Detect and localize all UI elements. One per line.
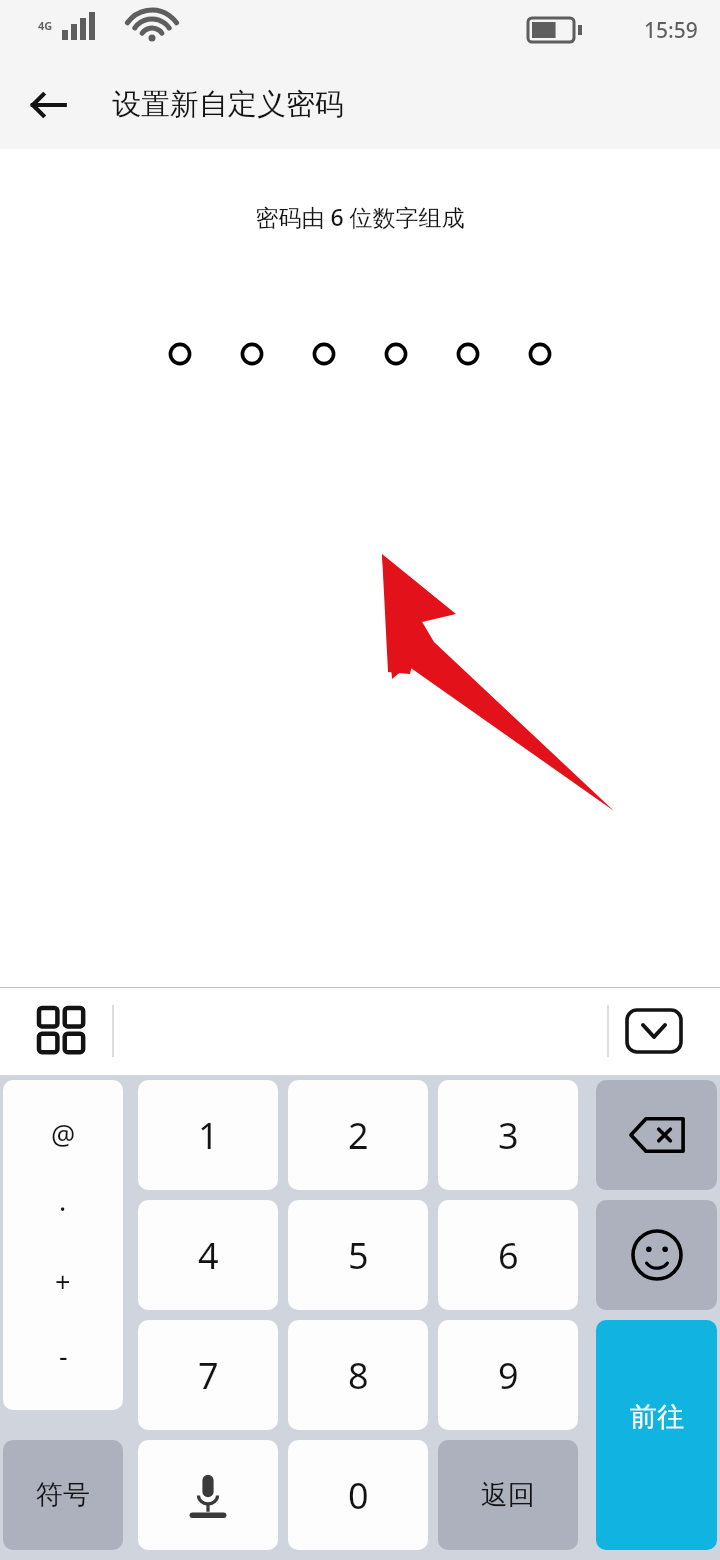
button[interactable]: Hide keyboard [614, 991, 694, 1071]
staticText: 15:59 [644, 16, 698, 45]
staticText: + [55, 1263, 71, 1300]
staticText: @ [51, 1116, 76, 1153]
button[interactable]: 4 [138, 1200, 278, 1310]
button[interactable]: 7 [138, 1320, 278, 1430]
staticText: 返回 [481, 1478, 535, 1512]
staticText: 符号 [36, 1478, 90, 1512]
staticText: 1 [198, 1111, 219, 1160]
button[interactable]: 符号 [3, 1440, 123, 1550]
button[interactable]: 8 [288, 1320, 428, 1430]
button[interactable]: Go [596, 1320, 717, 1550]
button[interactable]: 5 [288, 1200, 428, 1310]
button[interactable]: 1 [138, 1080, 278, 1190]
staticText: 9 [498, 1351, 519, 1400]
button[interactable]: Backspace [596, 1080, 717, 1190]
button[interactable]: 0 [288, 1440, 428, 1550]
staticText: · [59, 1190, 67, 1227]
button[interactable]: Keyboard layouts [22, 991, 102, 1071]
staticText: 7 [198, 1351, 219, 1400]
button[interactable]: @ [3, 1080, 123, 1410]
button[interactable]: 6 [438, 1200, 578, 1310]
staticText: 0 [348, 1471, 369, 1520]
staticText: 4 [198, 1231, 219, 1280]
staticText: 密码由 6 位数字组成 [0, 201, 720, 232]
staticText: 6 [498, 1231, 519, 1280]
button[interactable]: Back [16, 73, 80, 137]
button[interactable]: 3 [438, 1080, 578, 1190]
staticText: 设置新自定义密码 [112, 86, 344, 123]
staticText: 5 [348, 1231, 369, 1280]
staticText: 前往 [630, 1400, 684, 1434]
button[interactable]: 9 [438, 1320, 578, 1430]
staticText: 4G [38, 18, 53, 33]
staticText: 8 [348, 1351, 369, 1400]
staticText: - [59, 1337, 68, 1374]
button[interactable]: 返回 [438, 1440, 578, 1550]
button[interactable]: Emoji [596, 1200, 717, 1310]
button[interactable]: 2 [288, 1080, 428, 1190]
staticText: 2 [348, 1111, 369, 1160]
staticText: 3 [498, 1111, 519, 1160]
button[interactable]: Voice input [138, 1440, 278, 1550]
